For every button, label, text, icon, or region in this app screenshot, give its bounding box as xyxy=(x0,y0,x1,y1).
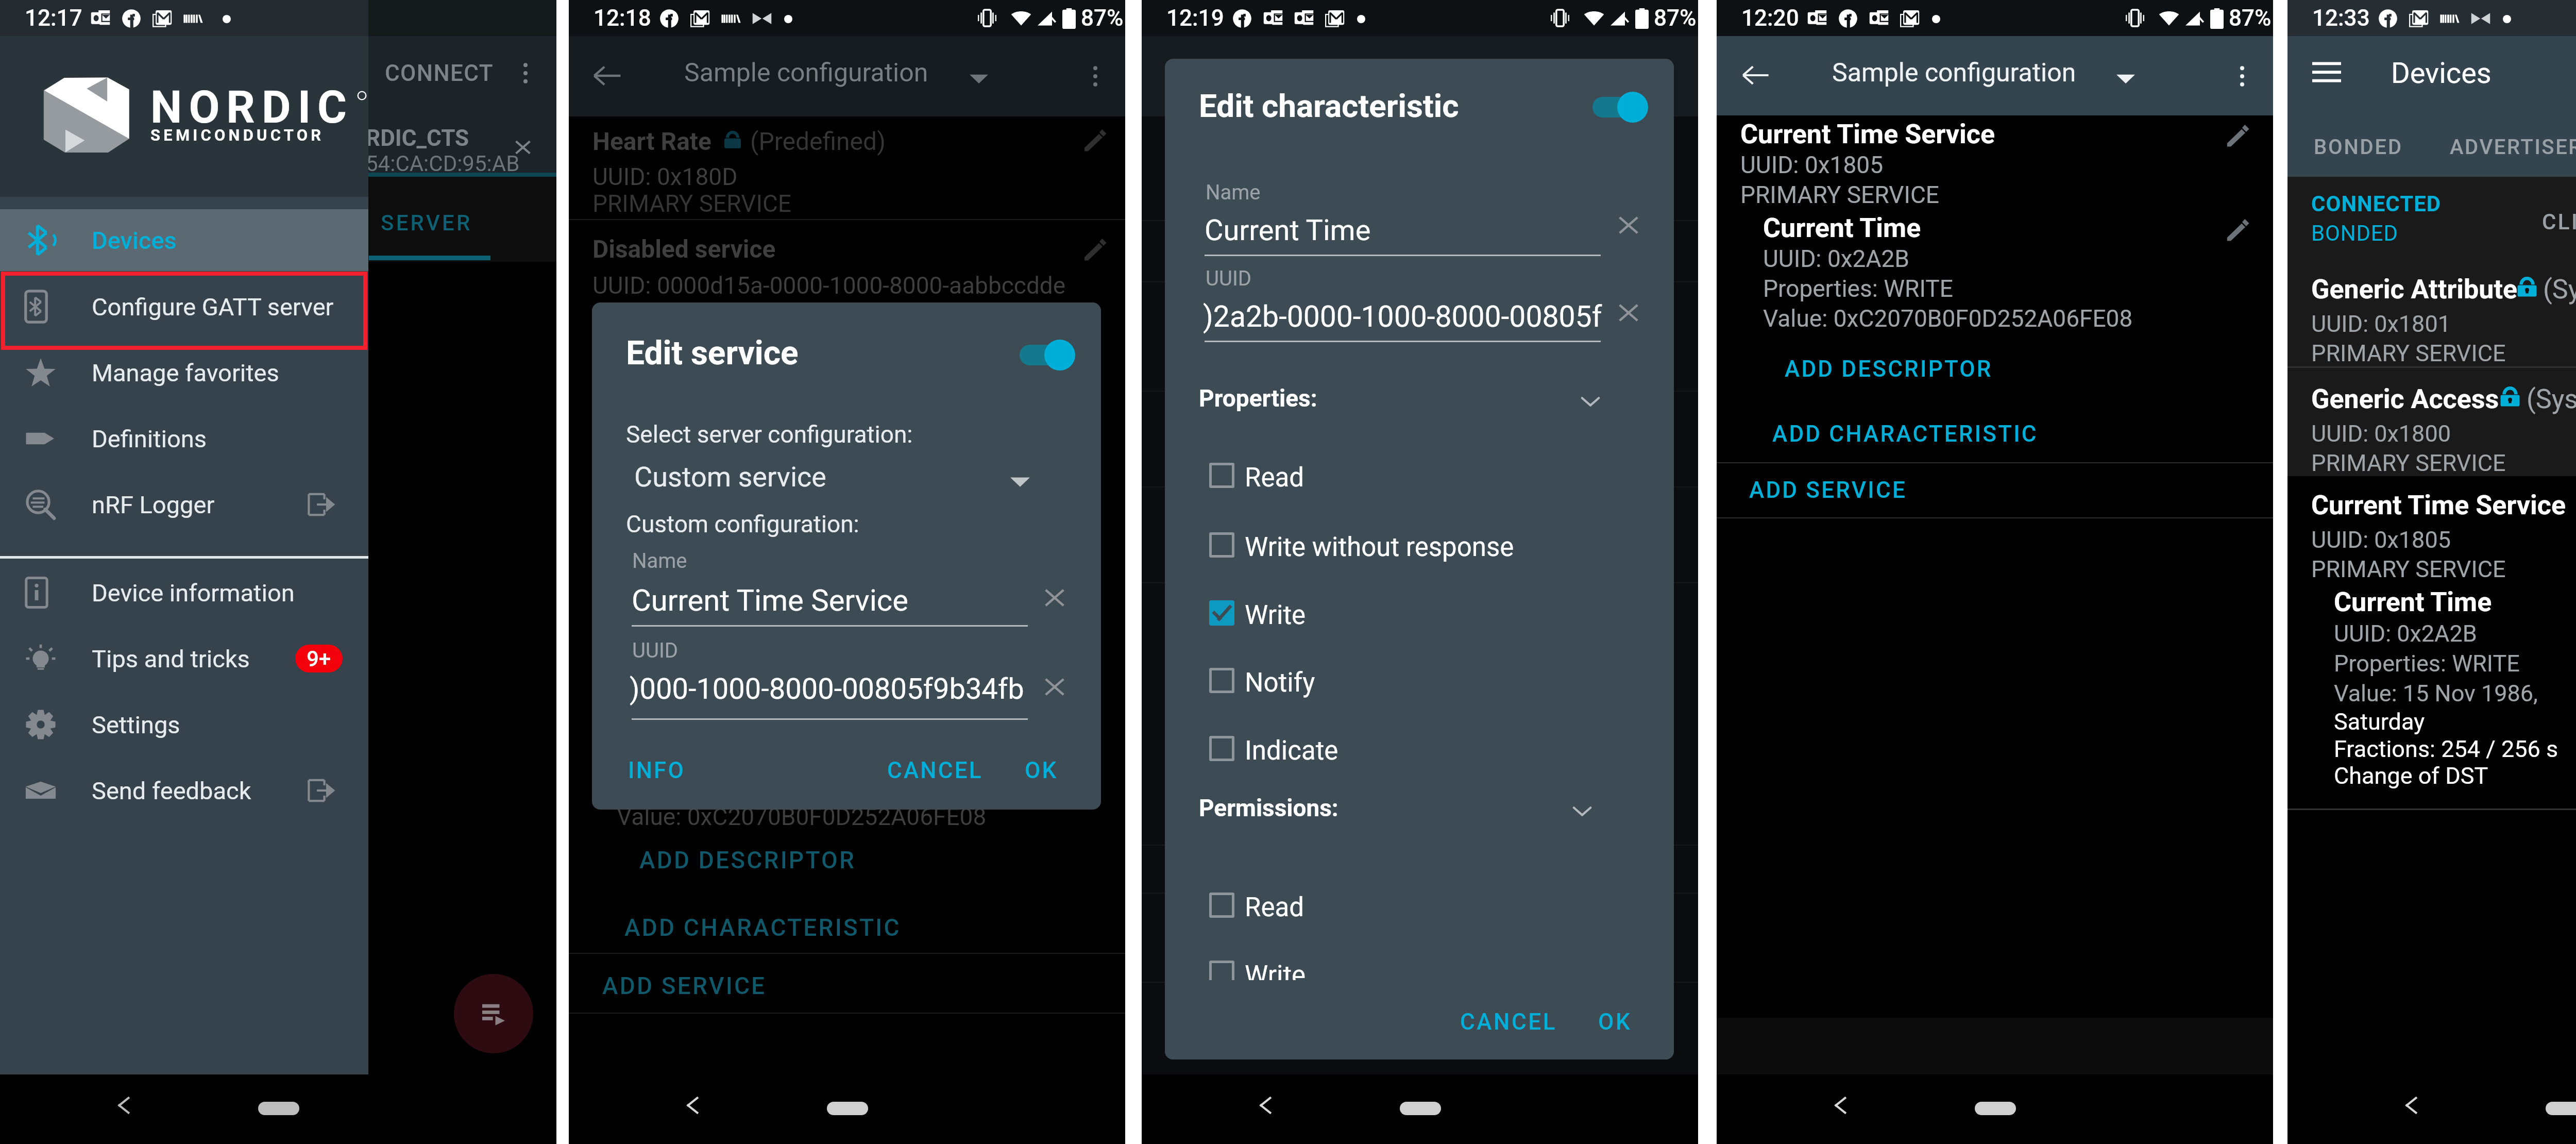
button[interactable]: Enabled xyxy=(1019,340,1075,371)
staticText: Generic Attribute xyxy=(2311,274,2518,305)
staticText: Configure GATT server xyxy=(92,293,334,321)
button[interactable]: Home xyxy=(258,1102,299,1115)
staticText: 12:19 xyxy=(1166,5,1224,31)
button[interactable]: OK xyxy=(1015,748,1067,793)
button[interactable] xyxy=(2287,262,2576,366)
button[interactable]: Home xyxy=(1400,1102,1441,1115)
button[interactable]: Devices xyxy=(0,209,368,271)
button[interactable]: Edit xyxy=(2227,124,2249,147)
button[interactable]: Indicate xyxy=(1165,719,1674,781)
button[interactable]: ADD SERVICE xyxy=(1742,469,1914,511)
staticText: PRIMARY SERVICE xyxy=(2311,556,2506,583)
button[interactable]: Manage favorites xyxy=(0,340,368,406)
button[interactable]: CANCEL xyxy=(1452,1000,1566,1044)
button[interactable]: OK xyxy=(1590,1000,1640,1044)
button[interactable]: Edit xyxy=(2227,218,2249,241)
staticText: Edit characteristic xyxy=(1199,87,1459,125)
button[interactable]: Home xyxy=(827,1102,868,1115)
button[interactable]: Send feedback xyxy=(0,758,368,823)
staticText: Send feedback xyxy=(92,777,251,805)
staticText: SERVER xyxy=(381,210,472,235)
button[interactable]: Back xyxy=(114,1096,133,1115)
staticText: ADD CHARACTERISTIC xyxy=(1772,420,2038,447)
button[interactable]: Notify xyxy=(1165,651,1674,713)
button[interactable]: More options xyxy=(511,59,540,88)
button[interactable]: Read xyxy=(1165,446,1674,508)
staticText: OK xyxy=(1025,757,1058,784)
button[interactable]: Write without response xyxy=(1165,516,1674,578)
staticText: CLIENT xyxy=(2542,209,2576,234)
staticText: Read xyxy=(1245,462,1304,493)
button[interactable]: Configure GATT server xyxy=(0,274,368,340)
button[interactable]: CANCEL xyxy=(878,748,992,793)
staticText: Custom configuration: xyxy=(626,510,859,538)
button[interactable]: Device information xyxy=(0,560,368,626)
staticText: Notify xyxy=(1245,667,1315,698)
staticText: Manage favorites xyxy=(92,359,279,387)
button[interactable]: Back xyxy=(1831,1096,1850,1115)
staticText: ADD SERVICE xyxy=(1749,477,1907,503)
button[interactable]: Edit xyxy=(1084,238,1107,261)
button[interactable]: ADVERTISER xyxy=(2429,117,2576,177)
staticText: (System) xyxy=(2527,383,2576,415)
staticText: Write without response xyxy=(1245,532,1514,563)
button[interactable]: Back xyxy=(1741,61,1770,90)
button[interactable]: More options xyxy=(2228,62,2257,91)
staticText: (Predefined) xyxy=(750,127,886,156)
staticText: UUID: 0x1800 xyxy=(2311,420,2451,447)
staticText: ADD DESCRIPTOR xyxy=(639,846,856,874)
staticText: Heart Rate xyxy=(592,127,712,156)
button[interactable]: Home xyxy=(1975,1102,2016,1115)
staticText: CONNECT xyxy=(385,60,494,87)
staticText: 12:17 xyxy=(25,5,82,31)
staticText: Tips and tricks xyxy=(92,645,250,673)
staticText: PRIMARY SERVICE xyxy=(592,190,792,217)
staticText: 54:CA:CD:95:AB xyxy=(366,151,520,176)
button[interactable]: Home xyxy=(2546,1102,2576,1115)
staticText: INFO xyxy=(628,757,686,784)
staticText: OK xyxy=(1598,1008,1632,1035)
staticText: Current Time Service xyxy=(1740,119,1995,150)
staticText: BONDED xyxy=(2314,135,2403,159)
button[interactable]: ADD CHARACTERISTIC xyxy=(1765,413,2045,455)
button[interactable]: Tips and tricks xyxy=(0,626,368,692)
staticText: Read xyxy=(1245,892,1304,923)
button[interactable]: Settings xyxy=(0,692,368,758)
button[interactable]: Back xyxy=(1256,1096,1275,1115)
staticText: Write xyxy=(1245,600,1306,631)
button[interactable]: Back xyxy=(592,61,622,91)
staticText: CANCEL xyxy=(1460,1008,1557,1035)
button[interactable]: Read xyxy=(1165,876,1674,938)
staticText: Properties: WRITE xyxy=(2334,650,2520,677)
button[interactable]: Enabled xyxy=(1591,92,1648,123)
staticText: )2a2b-0000-1000-8000-00805f xyxy=(1203,299,1602,334)
button[interactable]: ADD DESCRIPTOR xyxy=(1777,348,2000,390)
button[interactable]: More options xyxy=(1081,62,1110,91)
button[interactable]: Definitions xyxy=(0,406,368,472)
button[interactable] xyxy=(2287,368,2576,476)
button[interactable]: Write xyxy=(1165,944,1674,1006)
button[interactable]: Write xyxy=(1165,584,1674,646)
staticText: Indicate xyxy=(1245,735,1338,766)
staticText: UUID: 0000d15a-0000-1000-8000-aabbccdde xyxy=(592,272,1066,299)
button[interactable]: Back xyxy=(2402,1096,2420,1115)
button[interactable]: BONDED xyxy=(2287,117,2429,177)
staticText: Current Time Service xyxy=(632,583,908,618)
button[interactable] xyxy=(2287,476,2576,809)
staticText: PRIMARY SERVICE xyxy=(2311,340,2506,367)
button[interactable]: CLIENT xyxy=(2533,200,2576,244)
staticText: Sample configuration xyxy=(1832,58,2076,88)
staticText: Current Time xyxy=(1763,212,1921,244)
staticText: Current Time xyxy=(1205,213,1371,247)
staticText: 12:33 xyxy=(2312,5,2370,31)
staticText: )000-1000-8000-00805f9b34fb xyxy=(630,672,1024,706)
staticText: Value: 15 Nov 1986, 13:37:42, Day of wee… xyxy=(2334,680,2576,707)
button[interactable]: nRF Logger xyxy=(0,472,368,537)
button[interactable]: Menu xyxy=(2312,60,2341,84)
staticText: Sample configuration xyxy=(684,58,928,88)
button[interactable]: Log xyxy=(454,974,533,1053)
button[interactable]: Back xyxy=(683,1096,702,1115)
button[interactable]: Edit xyxy=(1084,129,1107,152)
button[interactable]: INFO xyxy=(619,748,695,793)
staticText: UUID: 0x1805 xyxy=(2311,526,2451,553)
